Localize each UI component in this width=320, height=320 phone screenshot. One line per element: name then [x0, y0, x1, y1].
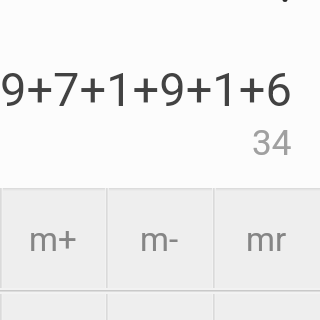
button[interactable]: m- — [106, 188, 213, 290]
button[interactable]: 9 — [213, 290, 320, 320]
staticText: 34 — [252, 123, 292, 164]
button[interactable]: 7 — [0, 290, 106, 320]
staticText: mr — [246, 220, 287, 259]
button[interactable]: More options — [271, 0, 299, 28]
button[interactable]: 8 — [106, 290, 213, 320]
staticText: m- — [140, 220, 179, 259]
staticText: 9+7+1+9+1+6 — [0, 62, 292, 117]
button[interactable]: mr — [213, 188, 320, 290]
button[interactable]: m+ — [0, 188, 106, 290]
staticText: m+ — [29, 220, 77, 259]
